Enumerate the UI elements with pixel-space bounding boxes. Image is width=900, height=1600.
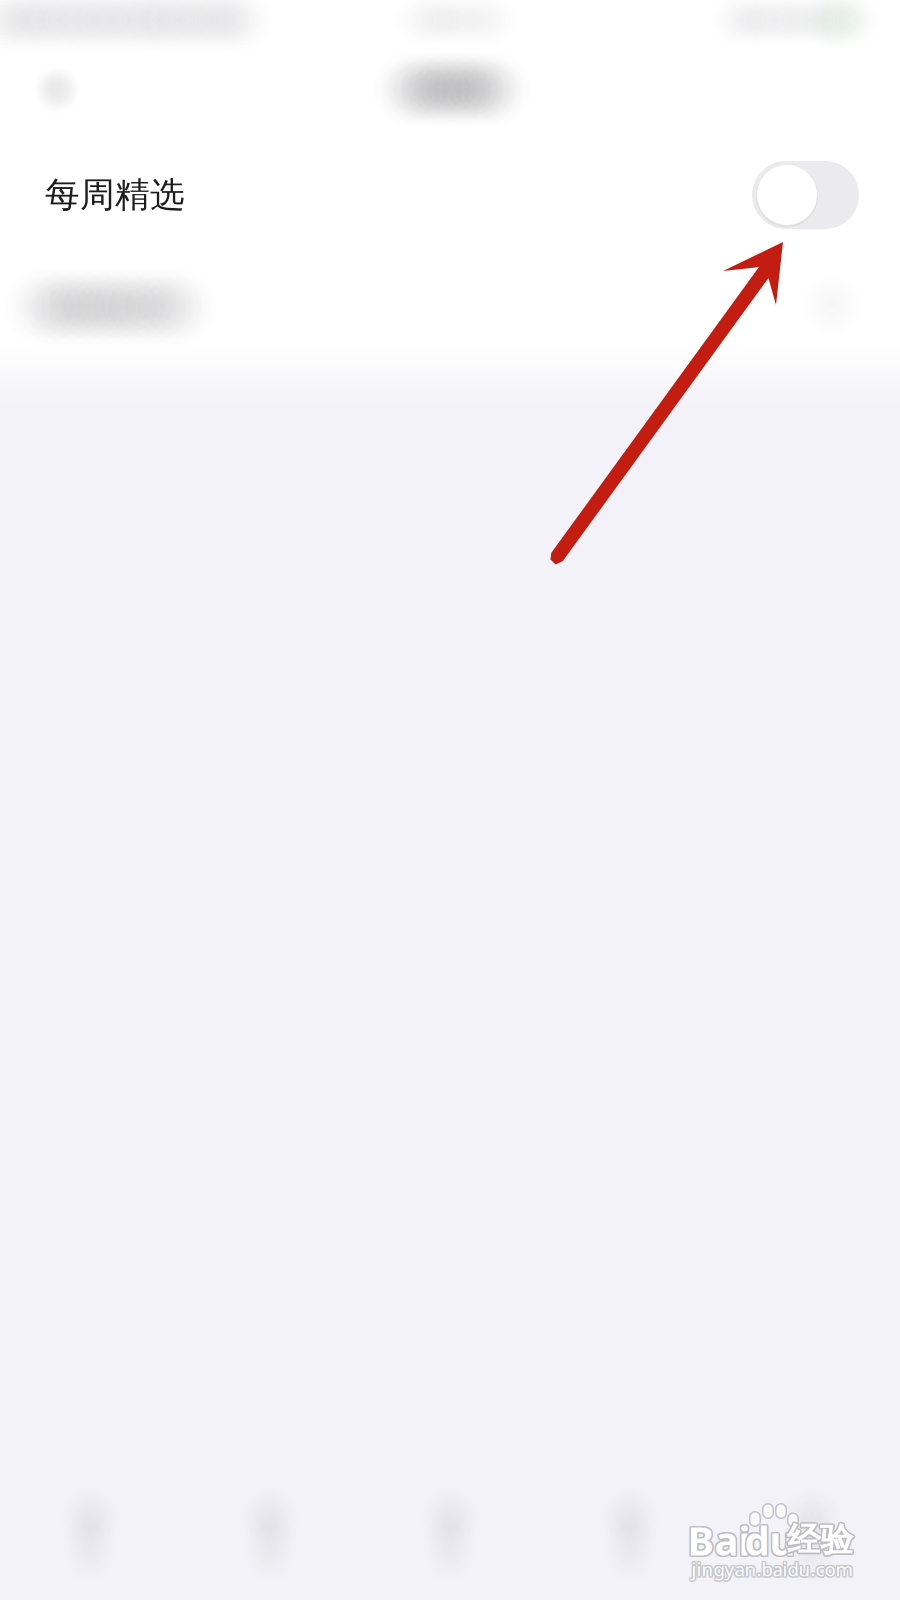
- staticText: jingyan.baidu.com: [691, 1555, 852, 1580]
- staticText: Bai: [686, 1513, 749, 1566]
- staticText: du: [744, 1515, 795, 1568]
- staticText: du: [746, 1512, 797, 1565]
- button[interactable]: 每周精选: [0, 129, 900, 261]
- staticText: du: [743, 1515, 794, 1568]
- staticText: du: [743, 1512, 794, 1565]
- staticText: jingyan.baidu.com: [693, 1555, 854, 1580]
- staticText: 经验: [785, 1519, 851, 1560]
- staticText: 经验: [786, 1518, 852, 1559]
- button[interactable]: Back: [13, 46, 101, 134]
- staticText: 经验: [787, 1521, 853, 1562]
- staticText: Bai: [689, 1512, 752, 1565]
- button[interactable]: Tab 5: [722, 1487, 900, 1600]
- staticText: 经验: [788, 1518, 854, 1559]
- staticText: jingyan.baidu.com: [691, 1557, 852, 1581]
- staticText: 经验: [787, 1519, 853, 1560]
- staticText: 经验: [788, 1521, 854, 1562]
- staticText: Bai: [687, 1515, 750, 1568]
- staticText: jingyan.baidu.com: [693, 1558, 854, 1583]
- staticText: Bai: [689, 1513, 752, 1566]
- staticText: jingyan.baidu.com: [693, 1557, 854, 1581]
- staticText: jingyan.baidu.com: [690, 1555, 851, 1580]
- staticText: du: [746, 1515, 797, 1568]
- staticText: 经验: [787, 1518, 853, 1559]
- staticText: du: [744, 1513, 795, 1566]
- staticText: Bai: [687, 1513, 750, 1566]
- staticText: du: [744, 1512, 795, 1565]
- staticText: Bai: [686, 1515, 749, 1568]
- staticText: du: [743, 1513, 794, 1566]
- staticText: jingyan.baidu.com: [690, 1557, 851, 1581]
- staticText: Bai: [689, 1515, 752, 1568]
- staticText: jingyan.baidu.com: [691, 1558, 852, 1583]
- staticText: Bai: [686, 1512, 749, 1565]
- staticText: 经验: [786, 1521, 852, 1562]
- staticText: du: [746, 1513, 797, 1566]
- staticText: 经验: [789, 1519, 855, 1560]
- button[interactable]: Tab 4: [540, 1487, 720, 1600]
- button[interactable]: Setting: [0, 251, 900, 363]
- staticText: Bai: [687, 1512, 750, 1565]
- staticText: 每周精选: [45, 174, 185, 216]
- staticText: jingyan.baidu.com: [690, 1558, 851, 1583]
